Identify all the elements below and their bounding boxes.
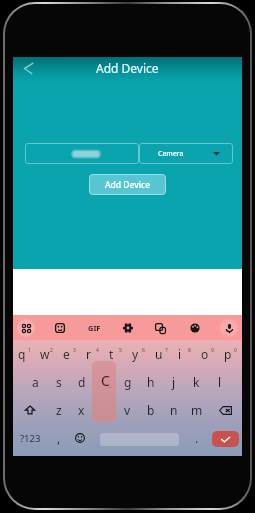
- button[interactable]: y: [127, 340, 150, 368]
- button[interactable]: m: [185, 396, 208, 424]
- button[interactable]: d: [70, 368, 93, 396]
- button[interactable]: Backspace: [208, 396, 242, 424]
- button[interactable]: Back: [16, 56, 40, 80]
- button[interactable]: f: [93, 368, 116, 396]
- staticText: e: [63, 346, 70, 362]
- button[interactable]: Enter: [212, 431, 239, 447]
- button[interactable]: t: [104, 340, 127, 368]
- button[interactable]: h: [139, 368, 162, 396]
- staticText: ?123: [20, 432, 41, 445]
- staticText: m: [191, 402, 203, 418]
- staticText: 4: [96, 347, 99, 354]
- button[interactable]: q: [13, 340, 35, 368]
- button[interactable]: Camera: [139, 143, 233, 164]
- staticText: p: [224, 346, 232, 362]
- button[interactable]: r: [81, 340, 104, 368]
- button[interactable]: u: [150, 340, 173, 368]
- staticText: Add Device: [105, 179, 151, 191]
- staticText: .: [195, 430, 199, 446]
- button[interactable]: C: [92, 361, 116, 422]
- button[interactable]: Settings: [119, 319, 137, 337]
- staticText: w: [40, 346, 50, 362]
- staticText: Camera: [158, 149, 184, 159]
- button[interactable]: j: [162, 368, 185, 396]
- button[interactable]: Voice input: [220, 319, 238, 337]
- button[interactable]: k: [185, 368, 208, 396]
- button[interactable]: g: [116, 368, 139, 396]
- staticText: j: [172, 374, 176, 390]
- button[interactable]: s: [47, 368, 70, 396]
- staticText: 1: [28, 347, 31, 354]
- button[interactable]: Translate: [151, 319, 169, 337]
- staticText: ,: [57, 430, 61, 446]
- button[interactable]: p: [219, 340, 242, 368]
- staticText: q: [18, 346, 26, 362]
- staticText: Add Device: [96, 60, 159, 76]
- button[interactable]: l: [208, 368, 231, 396]
- staticText: 5: [119, 347, 122, 354]
- button[interactable]: i: [173, 340, 196, 368]
- staticText: g: [124, 374, 132, 390]
- button[interactable]: o: [196, 340, 219, 368]
- staticText: GIF: [88, 323, 101, 333]
- staticText: 2: [50, 347, 53, 354]
- button[interactable]: n: [162, 396, 185, 424]
- staticText: n: [170, 402, 178, 418]
- button[interactable]: ?123: [19, 427, 41, 449]
- staticText: h: [147, 374, 155, 390]
- staticText: r: [86, 346, 91, 362]
- staticText: a: [32, 374, 39, 390]
- staticText: l: [218, 374, 222, 390]
- button[interactable]: x: [70, 396, 93, 424]
- staticText: C: [101, 371, 110, 390]
- button[interactable]: Add Device: [89, 174, 166, 195]
- button[interactable]: v: [116, 396, 139, 424]
- button[interactable]: e: [58, 340, 81, 368]
- staticText: ...: [108, 383, 113, 390]
- button[interactable]: z: [47, 396, 70, 424]
- staticText: o: [201, 346, 209, 362]
- staticText: f: [102, 374, 107, 390]
- button[interactable]: Shift: [13, 396, 47, 424]
- button[interactable]: [25, 143, 139, 164]
- button[interactable]: GIF: [85, 319, 103, 337]
- button[interactable]: a: [24, 368, 47, 396]
- button[interactable]: .: [186, 427, 208, 449]
- staticText: 8: [188, 347, 191, 354]
- button[interactable]: Apps: [17, 319, 35, 337]
- staticText: s: [56, 374, 62, 390]
- staticText: 0: [234, 347, 237, 354]
- button[interactable]: Emoji: [71, 429, 89, 447]
- staticText: 7: [165, 347, 168, 354]
- staticText: i: [178, 346, 182, 362]
- staticText: x: [78, 402, 85, 418]
- staticText: t: [109, 346, 114, 362]
- button[interactable]: w: [35, 340, 58, 368]
- staticText: k: [193, 374, 200, 390]
- staticText: y: [132, 346, 139, 362]
- button[interactable]: c: [93, 396, 116, 424]
- button[interactable]: Stickers: [51, 319, 69, 337]
- button[interactable]: ,: [48, 427, 70, 449]
- staticText: u: [155, 346, 163, 362]
- button[interactable]: Themes: [186, 319, 204, 337]
- staticText: z: [56, 402, 62, 418]
- staticText: b: [147, 402, 155, 418]
- staticText: 3: [73, 347, 76, 354]
- button[interactable]: b: [139, 396, 162, 424]
- staticText: 9: [211, 347, 214, 354]
- staticText: v: [124, 402, 131, 418]
- staticText: 6: [142, 347, 145, 354]
- staticText: d: [78, 374, 86, 390]
